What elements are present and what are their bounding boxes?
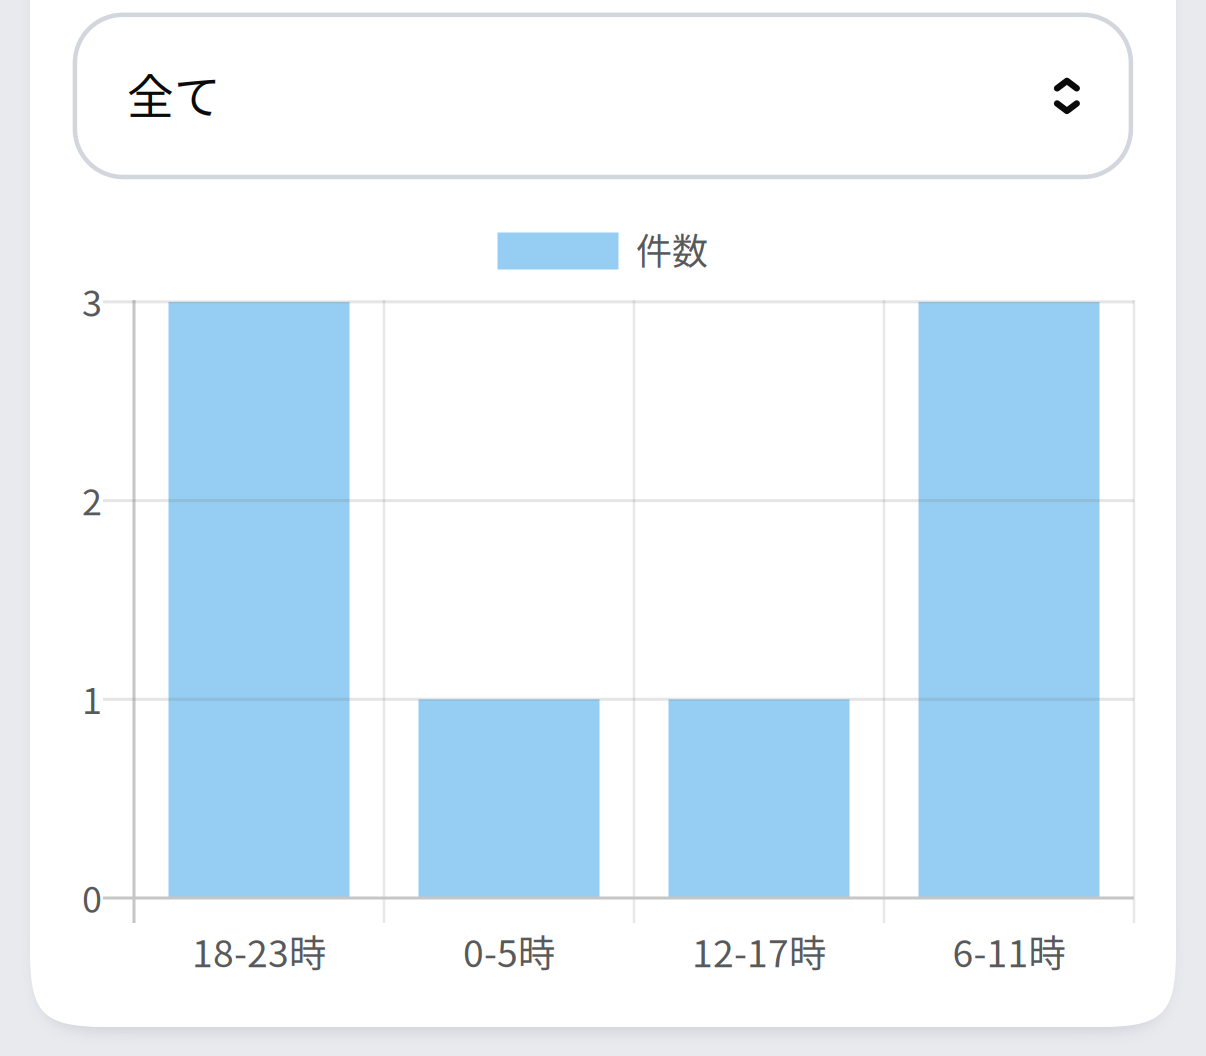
staticText: 18-23時 [192,924,326,978]
staticText: 2 [82,473,102,526]
staticText: 3 [82,275,102,327]
staticText: 0-5時 [463,924,555,978]
button[interactable]: 全て [75,15,1131,177]
staticText: 6-11時 [952,924,1065,978]
staticText: 0 [82,871,102,923]
staticText: 件数 [636,223,708,275]
staticText: 1 [82,672,102,724]
staticText: 12-17時 [692,924,826,978]
staticText: 全て [127,60,221,127]
